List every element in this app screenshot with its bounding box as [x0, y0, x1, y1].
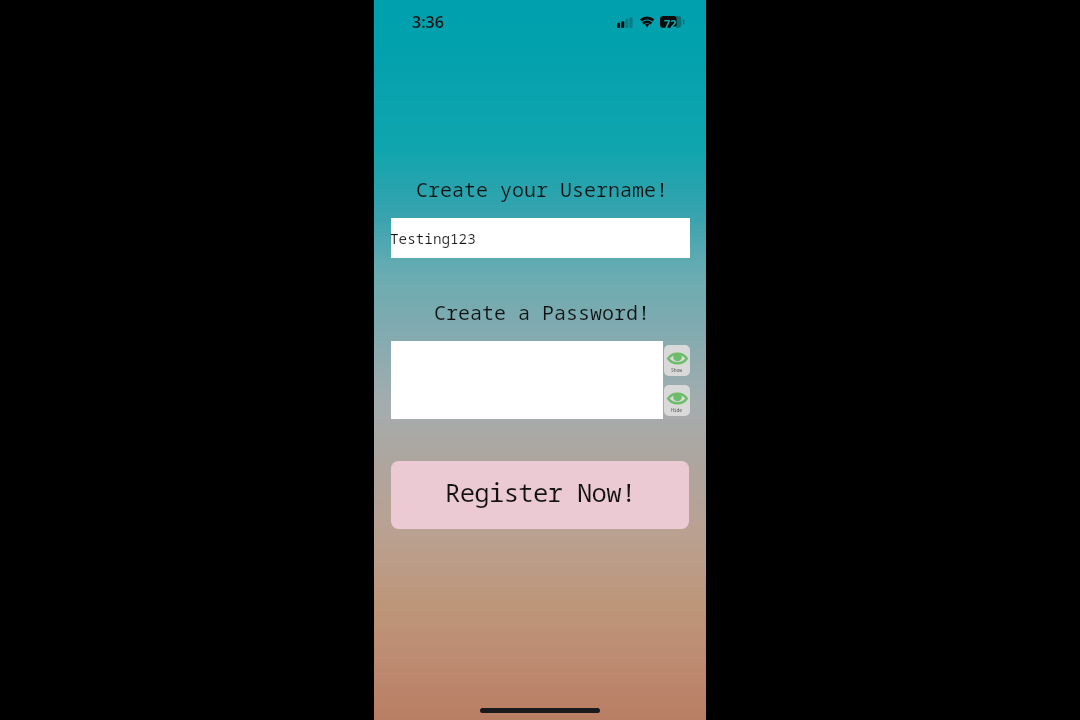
- button[interactable]: Register Now!: [391, 461, 689, 529]
- staticText: Testing123: [390, 229, 476, 248]
- staticText: 3:36: [412, 11, 444, 33]
- staticText: 72: [664, 16, 677, 31]
- staticText: Hide: [671, 407, 683, 413]
- staticText: Create a Password!: [376, 299, 708, 326]
- staticText: Create your Username!: [376, 176, 708, 203]
- staticText: Show: [671, 367, 683, 373]
- button[interactable]: Username input field: [391, 218, 690, 258]
- button[interactable]: Show: [664, 345, 690, 376]
- staticText: Register Now!: [445, 475, 636, 510]
- button[interactable]: Hide: [664, 385, 690, 416]
